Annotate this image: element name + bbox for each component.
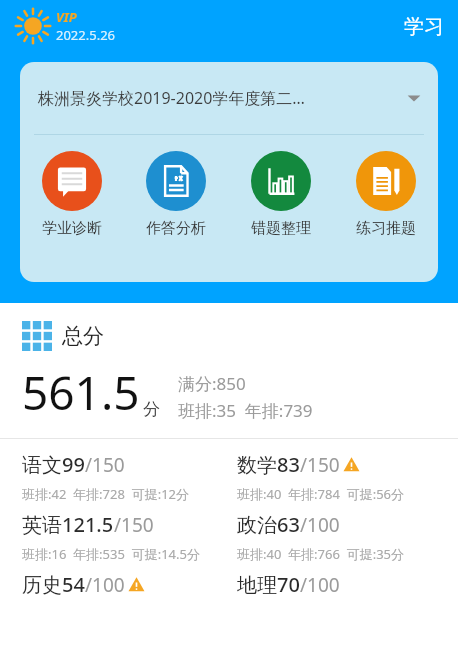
- button[interactable]: 地理70: [237, 571, 450, 598]
- button[interactable]: 语文99: [22, 451, 223, 503]
- button[interactable]: 株洲景炎学校2019-2020学年度第二…: [20, 62, 438, 134]
- staticText: 株洲景炎学校2019-2020学年度第二…: [38, 87, 398, 109]
- staticText: 学习: [404, 14, 444, 39]
- button[interactable]: 历史54: [22, 571, 223, 598]
- staticText: 班排:16 年排:535 可提:14.5分: [22, 545, 200, 563]
- staticText: 错题整理: [251, 219, 311, 238]
- button[interactable]: 学业诊断: [20, 149, 124, 240]
- staticText: 学业诊断: [42, 219, 102, 238]
- button[interactable]: 学习: [390, 8, 458, 45]
- button[interactable]: 数学83: [237, 451, 450, 503]
- staticText: 班排:42 年排:728 可提:12分: [22, 485, 190, 503]
- other: 警告: [128, 576, 145, 593]
- other: 展开: [406, 90, 422, 106]
- staticText: 作答分析: [146, 219, 206, 238]
- other: VIP: [16, 9, 50, 43]
- other: 警告: [343, 456, 360, 473]
- button[interactable]: 错题整理: [228, 149, 333, 240]
- button[interactable]: 练习推题: [333, 149, 438, 240]
- staticText: 地理70: [237, 571, 300, 598]
- staticText: 练习推题: [356, 219, 416, 238]
- staticText: 总分: [62, 323, 104, 349]
- staticText: /150: [114, 512, 154, 538]
- staticText: /100: [85, 572, 125, 598]
- staticText: /150: [85, 452, 125, 478]
- button[interactable]: 作答分析: [124, 149, 228, 240]
- staticText: /100: [300, 512, 340, 538]
- staticText: 历史54: [22, 571, 85, 598]
- staticText: 班排:35 年排:739: [178, 399, 313, 422]
- button[interactable]: 英语121.5: [22, 511, 223, 563]
- staticText: 政治63: [237, 511, 300, 538]
- staticText: /100: [300, 572, 340, 598]
- staticText: 2022.5.26: [56, 26, 116, 44]
- staticText: /150: [300, 452, 340, 478]
- staticText: 561.5: [22, 361, 140, 424]
- staticText: 语文99: [22, 451, 85, 478]
- staticText: 分: [143, 399, 160, 420]
- staticText: 英语121.5: [22, 511, 114, 538]
- button[interactable]: 政治63: [237, 511, 450, 563]
- staticText: 班排:40 年排:766 可提:35分: [237, 545, 405, 563]
- staticText: 班排:40 年排:784 可提:56分: [237, 485, 405, 503]
- staticText: VIP: [56, 8, 77, 26]
- staticText: 数学83: [237, 451, 300, 478]
- staticText: 满分:850: [178, 372, 246, 395]
